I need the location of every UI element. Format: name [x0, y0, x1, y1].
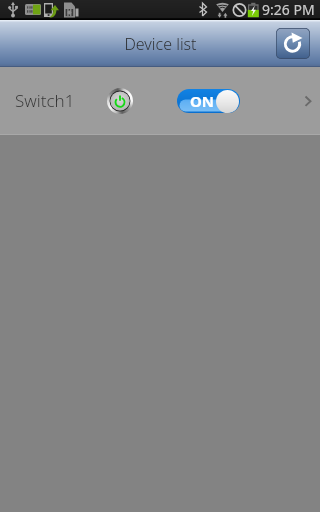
button[interactable]: Power [107, 88, 133, 114]
button[interactable]: Switch on [177, 89, 240, 113]
staticText: Device list [124, 33, 197, 55]
button[interactable]: Switch1 [0, 67, 320, 134]
staticText: 9:26 PM [262, 0, 315, 19]
staticText: Switch1 [15, 89, 75, 112]
staticText: ON [190, 91, 215, 111]
button[interactable]: Refresh [276, 28, 310, 59]
